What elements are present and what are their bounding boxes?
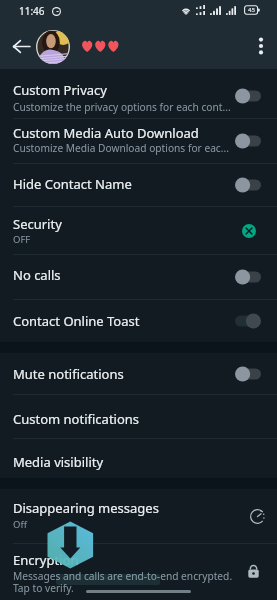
button[interactable]: More options — [245, 26, 276, 66]
button[interactable]: Disappearing messages timer — [248, 507, 266, 525]
staticText: Security — [13, 215, 228, 233]
staticText: Contact Online Toast — [13, 312, 228, 330]
button[interactable] — [0, 395, 277, 438]
button[interactable]: Toggle — [235, 313, 261, 329]
other: Encrypted — [245, 563, 261, 579]
staticText: No calls — [13, 266, 228, 284]
staticText: OFF — [13, 233, 31, 246]
staticText: Messages and calls are end-to-end encryp… — [13, 569, 243, 583]
staticText: Customize Media Download options for eac… — [13, 141, 243, 155]
staticText: Custom Media Auto Download — [13, 124, 228, 142]
button[interactable]: Security off — [241, 223, 257, 239]
staticText: Off — [13, 518, 27, 531]
button[interactable]: Toggle — [235, 269, 261, 285]
button[interactable]: Toggle — [235, 366, 261, 382]
button[interactable] — [0, 300, 277, 342]
button[interactable] — [0, 69, 277, 118]
staticText: Media visibility — [13, 453, 228, 471]
staticText: Mute notifications — [13, 365, 228, 383]
button[interactable] — [0, 544, 277, 600]
button[interactable] — [0, 164, 277, 206]
button[interactable]: Toggle — [235, 177, 261, 193]
staticText: Hide Contact Name — [13, 175, 228, 193]
button[interactable] — [0, 489, 277, 543]
button[interactable]: Back — [4, 26, 38, 66]
staticText: Customize the privacy options for each c… — [13, 100, 243, 114]
button[interactable]: Toggle — [235, 133, 261, 149]
button[interactable] — [81, 40, 120, 53]
button[interactable] — [0, 119, 277, 163]
button[interactable]: Profile photo — [36, 30, 70, 64]
button[interactable]: Toggle — [235, 88, 261, 104]
button[interactable] — [0, 353, 277, 394]
staticText: Disappearing messages — [13, 499, 228, 517]
staticText: Custom notifications — [13, 410, 228, 428]
staticText: Encryption — [13, 551, 228, 569]
staticText: Custom Privacy — [13, 81, 228, 99]
staticText: Tap to verify. — [13, 581, 243, 595]
staticText: 45 — [248, 6, 255, 14]
button[interactable] — [0, 207, 277, 254]
button[interactable] — [0, 255, 277, 299]
button[interactable] — [0, 439, 277, 478]
staticText: 11:46 — [19, 4, 45, 18]
